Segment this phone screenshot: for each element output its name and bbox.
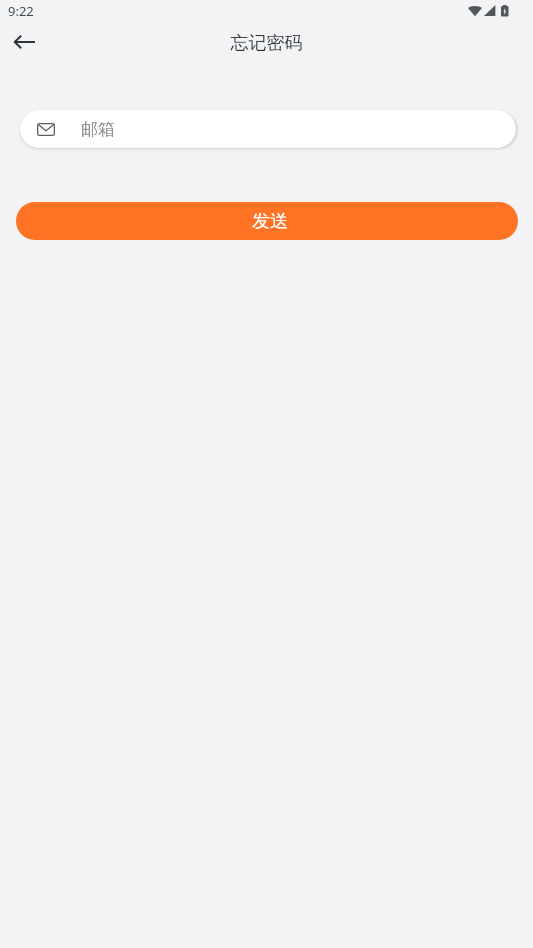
button[interactable]: 邮箱: [20, 110, 516, 148]
staticText: 发送: [252, 210, 288, 233]
staticText: 邮箱: [81, 119, 115, 140]
staticText: 忘记密码: [0, 32, 533, 55]
button[interactable]: Back: [4, 22, 44, 62]
staticText: 9:22: [8, 2, 34, 20]
button[interactable]: 发送: [16, 202, 518, 240]
